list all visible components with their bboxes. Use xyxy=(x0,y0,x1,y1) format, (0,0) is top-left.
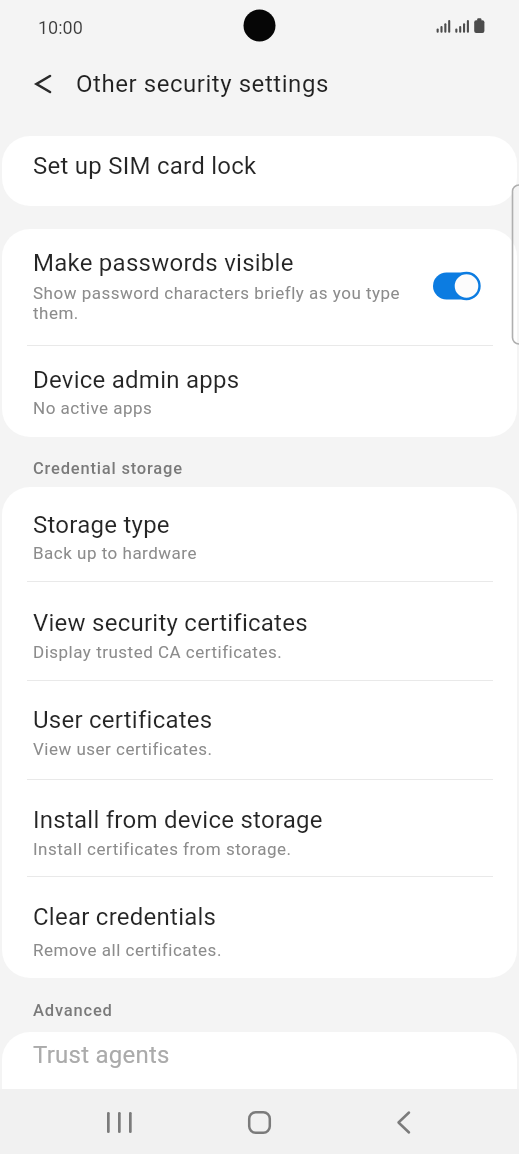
staticText: Install from device storage xyxy=(33,806,323,834)
button[interactable] xyxy=(424,260,492,312)
staticText: Back up to hardware xyxy=(33,543,197,563)
button[interactable] xyxy=(2,487,517,581)
button[interactable]: Trust agents xyxy=(2,1032,517,1089)
button[interactable] xyxy=(95,1098,143,1146)
staticText: View user certificates. xyxy=(33,739,213,759)
button[interactable] xyxy=(2,582,517,680)
button[interactable] xyxy=(2,780,517,876)
button[interactable] xyxy=(379,1098,427,1146)
button[interactable] xyxy=(2,681,517,779)
staticText: Other security settings xyxy=(76,70,329,98)
staticText: Display trusted CA certificates. xyxy=(33,642,283,662)
button[interactable] xyxy=(235,1098,283,1146)
staticText: View security certificates xyxy=(33,609,308,637)
staticText: Advanced xyxy=(33,1001,113,1020)
button[interactable]: Set up SIM card lock xyxy=(2,136,517,206)
staticText: Credential storage xyxy=(33,459,183,478)
staticText: Trust agents xyxy=(33,1041,170,1069)
staticText: 10:00 xyxy=(38,17,83,38)
staticText: Make passwords visible xyxy=(33,249,294,277)
staticText: Show password characters briefly as you … xyxy=(33,283,401,323)
staticText: Install certificates from storage. xyxy=(33,839,292,859)
button[interactable] xyxy=(18,60,68,108)
staticText: No active apps xyxy=(33,398,153,418)
button[interactable] xyxy=(2,229,517,345)
staticText: User certificates xyxy=(33,706,213,734)
staticText: Device admin apps xyxy=(33,366,240,394)
button[interactable] xyxy=(2,877,517,978)
staticText: Clear credentials xyxy=(33,903,217,931)
staticText: Remove all certificates. xyxy=(33,940,222,960)
staticText: Storage type xyxy=(33,511,170,539)
staticText: Set up SIM card lock xyxy=(33,152,257,180)
button[interactable] xyxy=(2,346,517,437)
